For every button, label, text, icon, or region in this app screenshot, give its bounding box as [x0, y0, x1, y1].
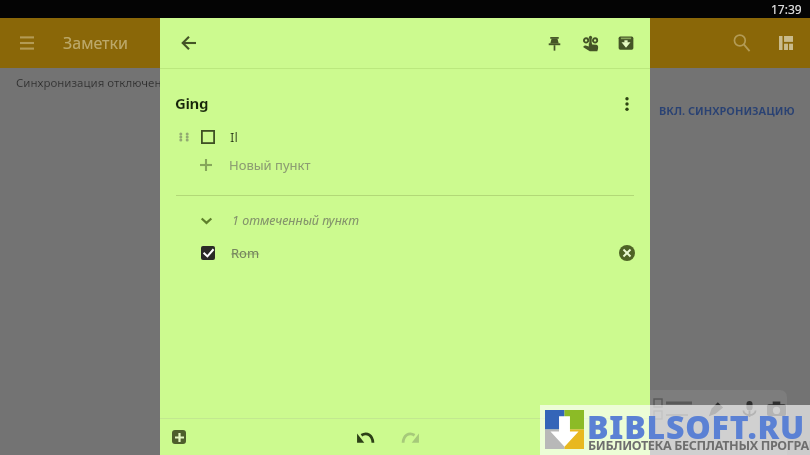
button[interactable]: New list note	[648, 396, 698, 422]
button[interactable]: Reminder	[572, 25, 608, 61]
button[interactable]: Delete item	[612, 239, 642, 267]
button[interactable]: 1 отмеченный пункт	[160, 207, 650, 233]
button[interactable]: Open navigation drawer	[2, 18, 52, 68]
button[interactable]: ВКЛ. СИНХРОНИЗАЦИЮ	[650, 96, 804, 125]
staticText: Заметки	[63, 32, 128, 54]
button[interactable]: Pin note	[536, 25, 572, 61]
staticText: 17:39	[771, 1, 802, 17]
button[interactable]: More options	[611, 88, 643, 120]
button[interactable]: Undo	[347, 419, 383, 455]
button[interactable]: Search	[720, 21, 764, 65]
staticText: Rom	[231, 244, 260, 262]
staticText: Новый пункт	[229, 156, 311, 174]
button[interactable]: Redo	[393, 419, 429, 455]
button[interactable]: New image note	[766, 392, 787, 426]
button[interactable]: Change list view	[764, 21, 808, 65]
staticText: Ging	[175, 93, 208, 113]
button[interactable]: Back	[169, 23, 209, 63]
button[interactable]: Add	[164, 422, 194, 452]
staticText: ВКЛ. СИНХРОНИЗАЦИЮ	[659, 103, 795, 118]
staticText: БИБЛИОТЕКА БЕСПЛАТНЫХ ПРОГРАММ	[588, 437, 810, 454]
staticText: Il	[230, 128, 238, 146]
button[interactable]: Rom	[160, 239, 650, 267]
staticText: 1 отмеченный пункт	[232, 212, 359, 229]
button[interactable]: New drawing	[698, 392, 732, 426]
button[interactable]: Новый пункт	[160, 151, 650, 179]
button[interactable]: Archive	[608, 25, 644, 61]
button[interactable]: Il	[160, 123, 650, 151]
staticText: BIBLSOFT.RU	[587, 405, 805, 449]
staticText: Синхронизация отключена. Включите синхро…	[16, 75, 569, 91]
button[interactable]: New voice note	[732, 392, 766, 426]
